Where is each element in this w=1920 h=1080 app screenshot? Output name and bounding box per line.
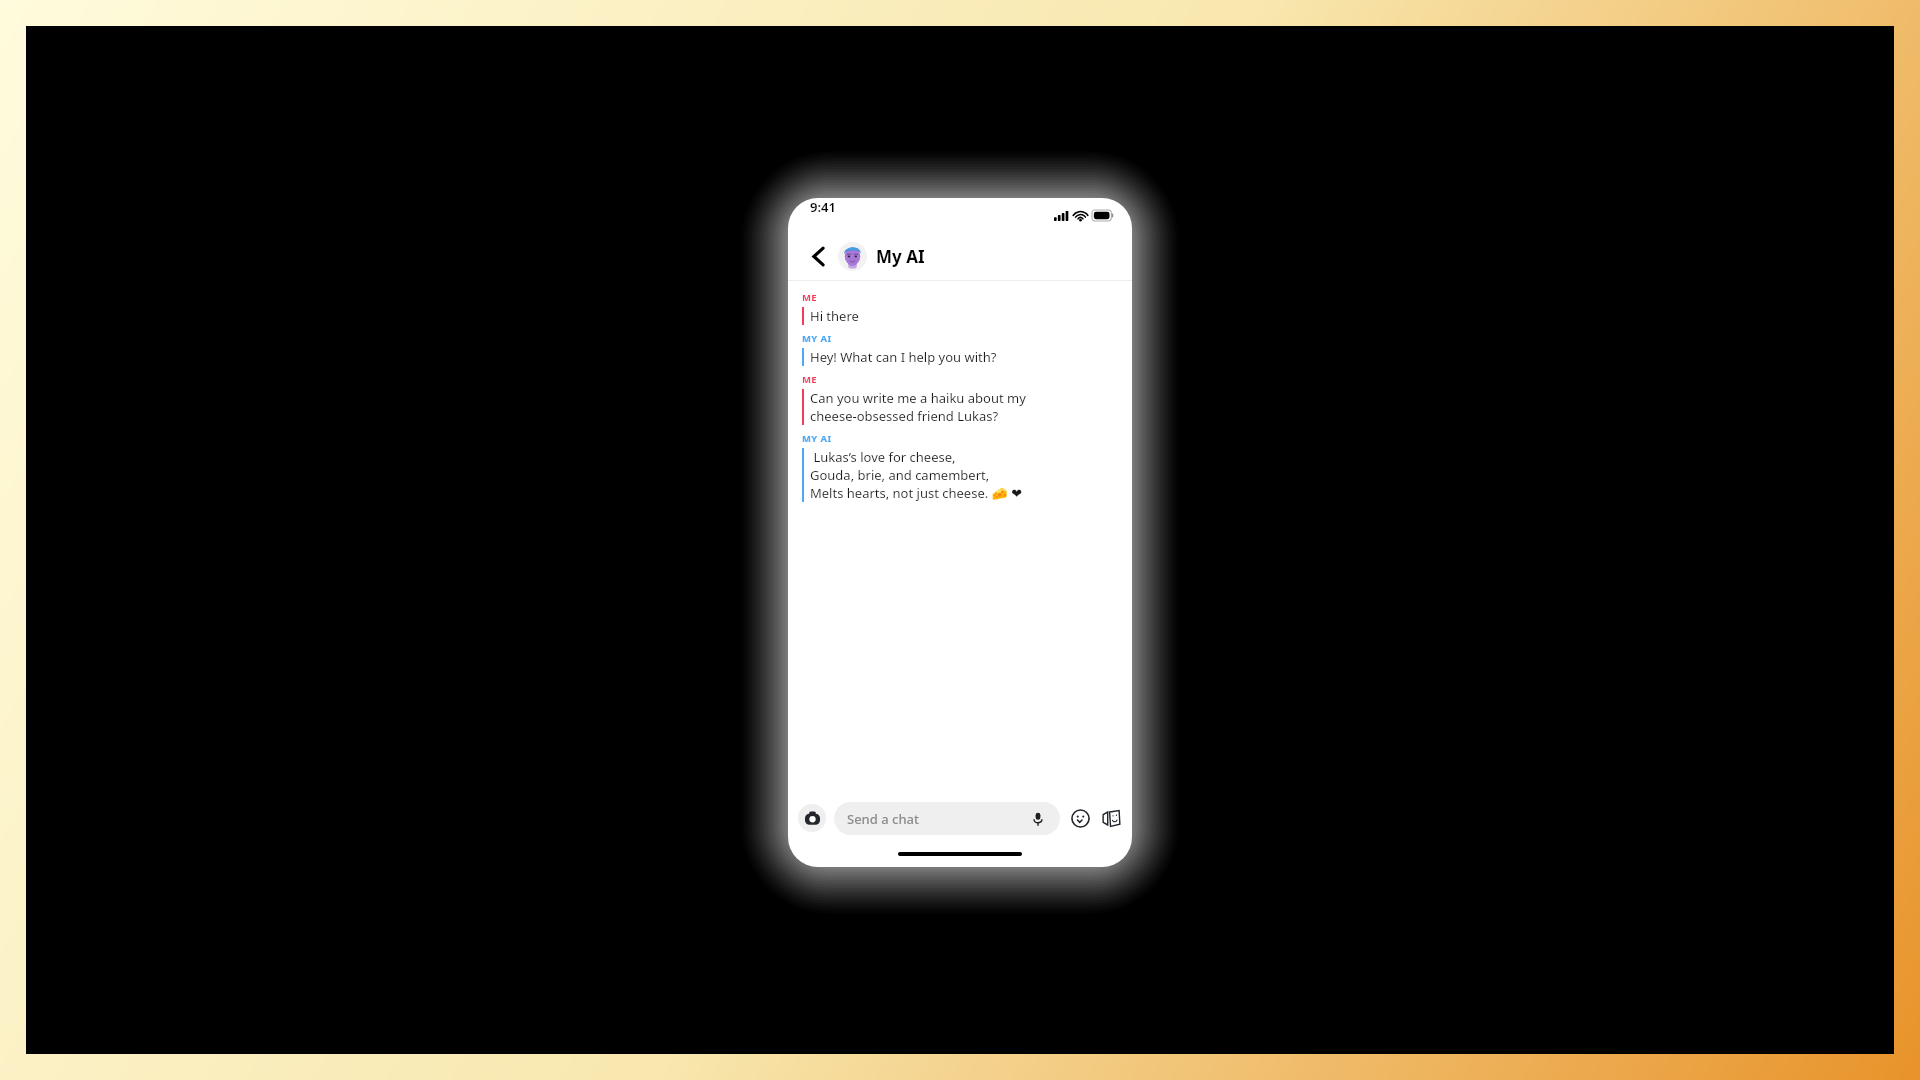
button[interactable]: ME (788, 291, 1132, 332)
button[interactable]: My AI (876, 245, 925, 268)
button[interactable]: Voice message (1029, 810, 1047, 828)
staticText: ME (802, 373, 818, 386)
button[interactable]: Send a chat (834, 802, 1060, 835)
button[interactable]: Emoji (1069, 807, 1091, 829)
staticText: Gouda, brie, and camembert, (810, 466, 990, 484)
button[interactable]: ME (788, 373, 1132, 432)
button[interactable]: Stickers (1100, 807, 1122, 829)
staticText: MY AI (802, 432, 832, 445)
button[interactable]: Back (802, 240, 834, 272)
button[interactable]: MY AI (788, 332, 1132, 373)
staticText: cheese-obsessed friend Lukas? (810, 407, 999, 425)
button[interactable]: My AI avatar (838, 242, 867, 271)
staticText: Can you write me a haiku about my (810, 389, 1026, 407)
staticText: Send a chat (847, 810, 1029, 828)
staticText: Melts hearts, not just cheese. 🧀 ❤️ (810, 484, 1023, 502)
staticText: 9:41 (810, 198, 836, 216)
staticText: Lukas’s love for cheese, (810, 448, 956, 466)
staticText: ME (802, 291, 818, 304)
button[interactable]: MY AI (788, 432, 1132, 509)
staticText: Hey! What can I help you with? (810, 348, 997, 366)
staticText: Hi there (810, 307, 859, 325)
button[interactable]: Camera (798, 804, 826, 832)
staticText: MY AI (802, 332, 832, 345)
